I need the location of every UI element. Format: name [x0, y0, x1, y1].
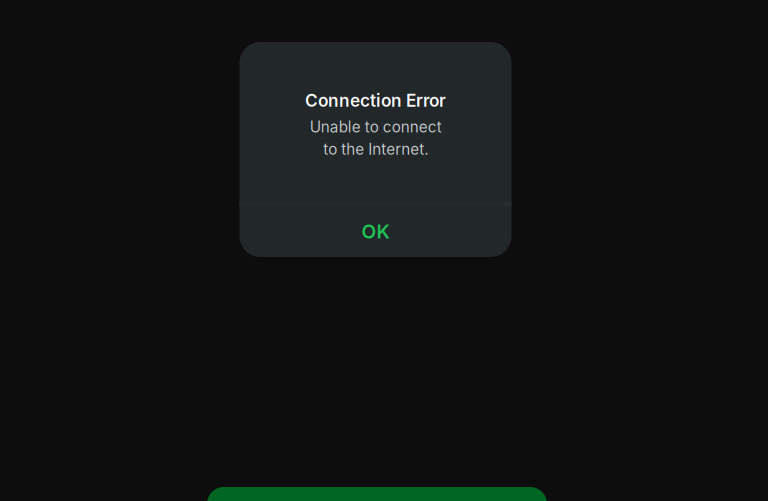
staticText: Connection Error: [305, 90, 446, 111]
staticText: OK: [361, 220, 389, 243]
button[interactable]: OK: [239, 206, 511, 257]
staticText: Unable to connect to the Internet.: [309, 118, 441, 158]
button[interactable]: Continue: [207, 487, 547, 501]
